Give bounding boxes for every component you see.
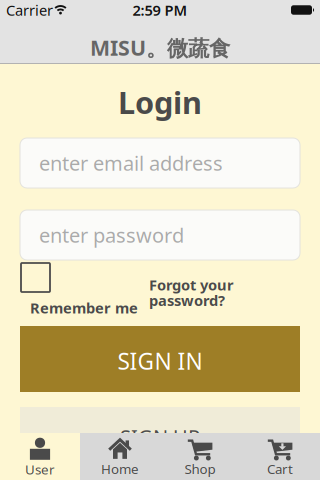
staticText: SIGN UP [120, 423, 200, 450]
staticText: Carrier [6, 0, 53, 20]
staticText: Remember me [30, 298, 138, 317]
staticText: Cart [267, 460, 293, 478]
staticText: User [25, 460, 55, 478]
button[interactable]: enter password [20, 210, 300, 260]
staticText: SIGN IN [117, 346, 202, 376]
button[interactable]: Cart [240, 433, 320, 480]
button[interactable]: SIGN IN [20, 326, 300, 392]
staticText: Shop [184, 460, 215, 478]
button[interactable]: Remember me checkbox [21, 263, 50, 292]
button[interactable]: Shop [160, 433, 240, 480]
staticText: enter password [39, 222, 184, 248]
staticText: Forgot your [149, 275, 234, 294]
staticText: Login [118, 82, 202, 122]
button[interactable]: enter email address [20, 138, 300, 188]
button[interactable]: SIGN UP [20, 407, 300, 473]
staticText: enter email address [39, 150, 223, 176]
staticText: password? [149, 290, 225, 310]
button[interactable]: User [0, 433, 80, 480]
staticText: 2:59 PM [132, 0, 187, 20]
button[interactable]: Forgot your [149, 275, 234, 310]
staticText: MISU。微蔬食 [90, 33, 230, 62]
staticText: Home [101, 460, 139, 478]
button[interactable]: Home [80, 433, 160, 480]
